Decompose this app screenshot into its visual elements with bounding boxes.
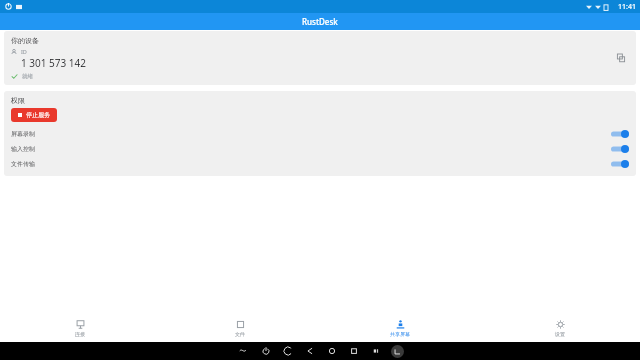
button[interactable]: 共享屏幕	[320, 314, 480, 342]
staticText: 设置	[555, 331, 565, 337]
staticText: 屏幕录制	[11, 130, 35, 138]
staticText: 输入控制	[11, 145, 35, 153]
staticText: RustDesk	[302, 16, 338, 27]
staticText: 共享屏幕	[390, 331, 410, 337]
staticText: 就绪	[22, 73, 33, 80]
button[interactable]: 文件传输	[11, 156, 629, 171]
staticText: 文件	[235, 331, 245, 337]
button[interactable]: Recents	[350, 347, 358, 355]
button[interactable]: 停止服务	[11, 108, 57, 122]
button[interactable]: Volume down	[284, 347, 292, 355]
button[interactable]: 文件	[160, 314, 320, 342]
staticText: 停止服务	[26, 111, 50, 119]
staticText: 你的设备	[11, 36, 39, 45]
staticText: 连接	[75, 331, 85, 337]
button[interactable]: Power	[262, 347, 270, 355]
button[interactable]: Home	[328, 347, 336, 355]
button[interactable]: Volume up	[372, 347, 380, 355]
staticText: ID	[21, 48, 27, 55]
button[interactable]: Screenshot	[391, 345, 404, 358]
staticText: 1 301 573 142	[21, 56, 86, 70]
staticText: 11:41	[618, 2, 636, 12]
button[interactable]: Copy ID	[613, 50, 629, 66]
button[interactable]: 输入控制	[11, 141, 629, 156]
staticText: 权限	[11, 96, 25, 105]
staticText: 文件传输	[11, 160, 35, 168]
button[interactable]: 屏幕录制	[11, 126, 629, 141]
button[interactable]: 连接	[0, 314, 160, 342]
button[interactable]: Keyboard	[240, 347, 248, 355]
button[interactable]: 设置	[480, 314, 640, 342]
button[interactable]: Back	[306, 347, 314, 355]
